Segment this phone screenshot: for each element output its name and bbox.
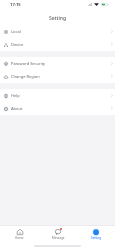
button[interactable]: Local bbox=[0, 25, 115, 38]
button[interactable]: About bbox=[0, 102, 115, 115]
button[interactable]: Password Security bbox=[0, 57, 115, 70]
staticText: Setting bbox=[49, 15, 67, 22]
staticText: Message bbox=[52, 236, 65, 240]
staticText: Home bbox=[15, 236, 24, 240]
staticText: About bbox=[11, 106, 23, 111]
button[interactable]: Change Region bbox=[0, 70, 115, 83]
staticText: Password Security bbox=[11, 61, 46, 66]
button[interactable]: Device bbox=[0, 38, 115, 51]
button[interactable]: Message bbox=[39, 229, 77, 240]
staticText: Setting bbox=[91, 236, 101, 240]
staticText: Local bbox=[11, 29, 21, 34]
button[interactable]: Setting bbox=[77, 229, 115, 240]
staticText: Help bbox=[11, 93, 20, 98]
button[interactable]: Home bbox=[0, 229, 39, 240]
staticText: Device bbox=[11, 42, 24, 47]
button[interactable]: Help bbox=[0, 89, 115, 102]
staticText: Change Region bbox=[11, 74, 40, 79]
staticText: 17:15 bbox=[10, 2, 21, 8]
